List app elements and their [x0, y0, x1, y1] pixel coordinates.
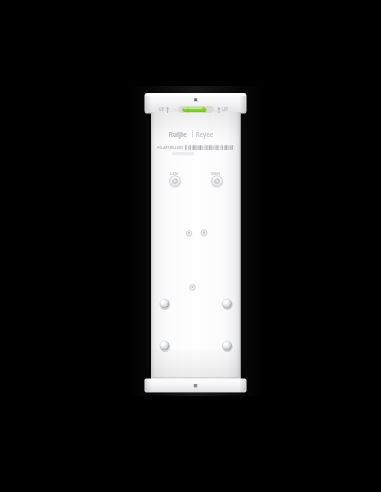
button[interactable]: Ruijie Reyee access point product photo — [0, 0, 381, 492]
